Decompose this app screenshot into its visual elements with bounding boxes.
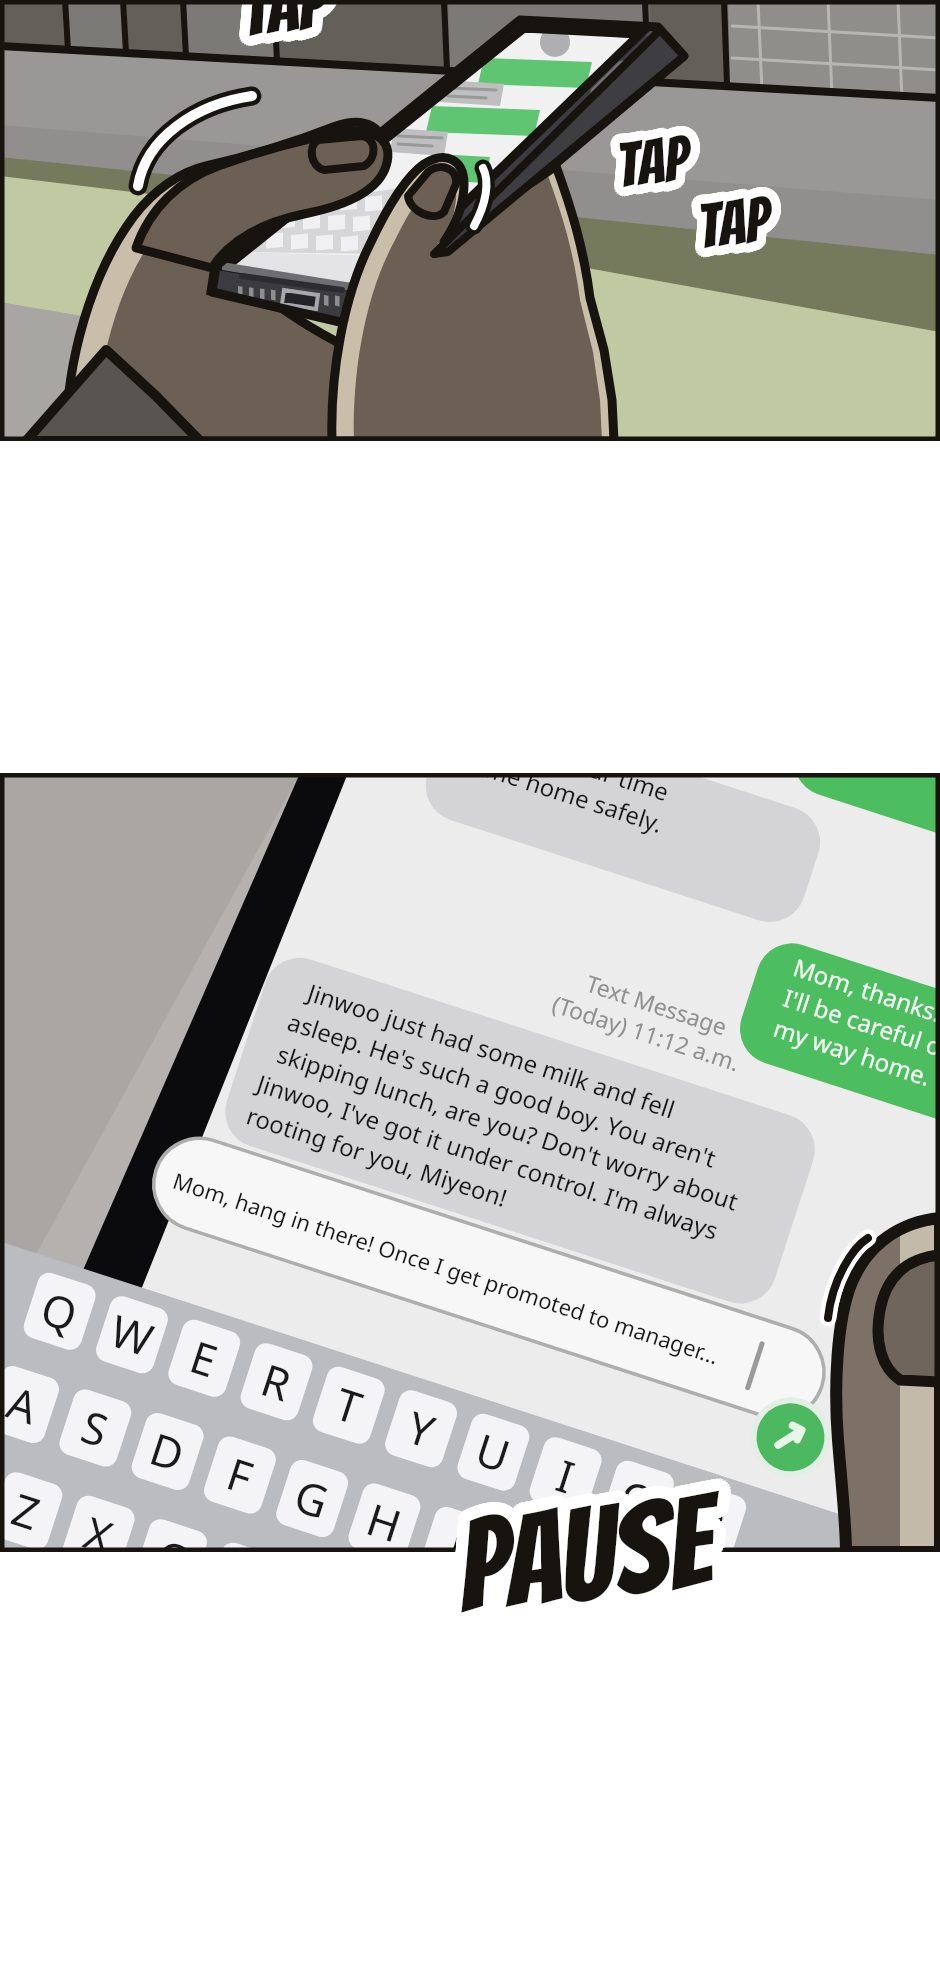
button[interactable]: Comic panel 1 — [0, 0, 940, 441]
button[interactable]: Send message — [758, 1408, 824, 1474]
button[interactable]: Comic panel 2 — [0, 773, 940, 1552]
